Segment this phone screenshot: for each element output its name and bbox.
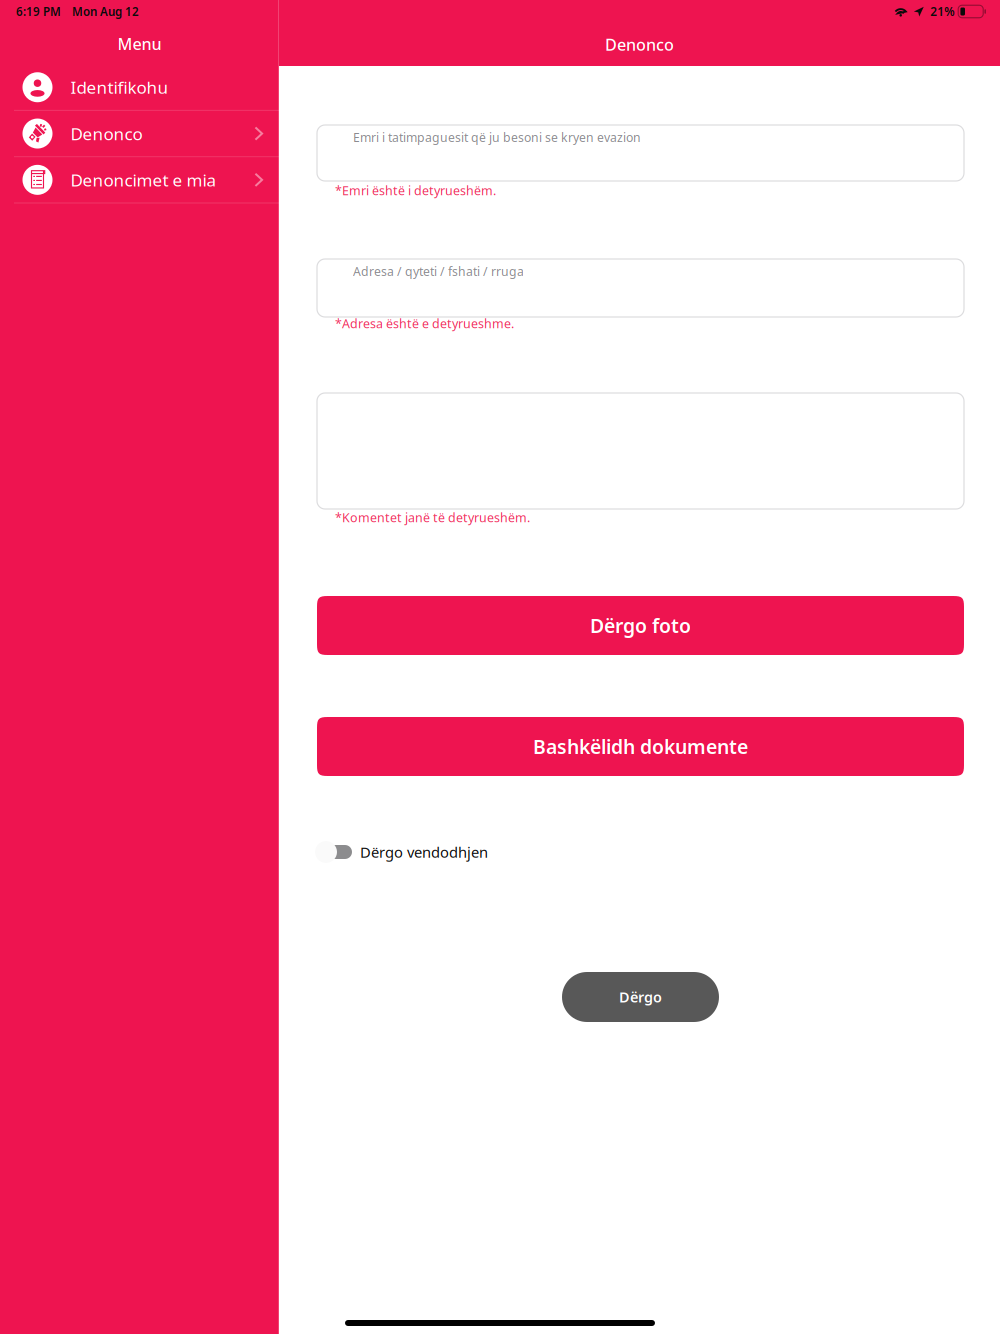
staticText: Denonco [70,122,142,145]
staticText: Dërgo [619,987,662,1007]
button[interactable]: Dërgo foto [317,596,964,655]
button[interactable]: Dërgo vendodhjen [315,841,352,863]
staticText: Adresa / qyteti / fshati / rruga [353,263,524,280]
button[interactable]: Denonco [0,111,279,157]
staticText: Identifikohu [70,76,168,99]
staticText: Dërgo foto [590,612,691,639]
button[interactable]: Identifikohu [0,65,279,111]
staticText: Dërgo vendodhjen [360,842,488,862]
button[interactable]: Dërgo [562,972,719,1022]
button[interactable]: Bashkëlidh dokumente [317,717,964,776]
staticText: Mon Aug 12 [72,4,139,19]
staticText: Emri i tatimpaguesit që ju besoni se kry… [353,129,641,146]
staticText: 6:19 PM [16,4,61,19]
staticText: *Emri është i detyrueshëm. [335,182,496,199]
staticText: Bashkëlidh dokumente [533,733,748,760]
staticText: Menu [117,33,161,55]
button[interactable]: Denoncimet e mia [0,157,279,203]
staticText: *Komentet janë të detyrueshëm. [335,509,530,526]
staticText: 21% [930,3,954,20]
staticText: Denoncimet e mia [70,168,216,191]
staticText: *Adresa është e detyrueshme. [335,315,514,332]
staticText: Denonco [605,33,674,56]
